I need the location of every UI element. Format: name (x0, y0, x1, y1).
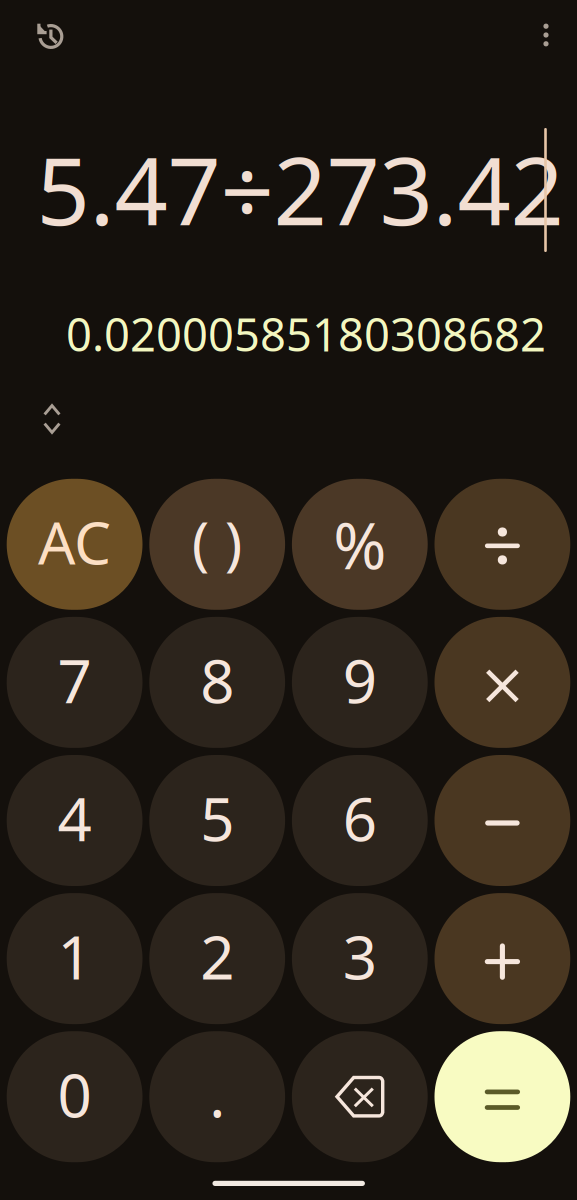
button[interactable]: AC (7, 479, 142, 610)
button[interactable]: Expand (30, 397, 74, 441)
button[interactable]: 5 (149, 755, 285, 886)
button[interactable]: 9 (292, 617, 428, 748)
button[interactable]: 3 (292, 893, 428, 1024)
staticText: 7 (58, 640, 92, 720)
staticText: 6 (343, 778, 377, 858)
staticText: 5 (200, 778, 234, 858)
button[interactable]: Multiply (434, 617, 570, 748)
staticText: 0.02000585180308682 (66, 304, 546, 364)
staticText: 0 (58, 1054, 92, 1134)
button[interactable]: Backspace (292, 1031, 428, 1162)
staticText: 2 (200, 916, 234, 996)
button[interactable]: Plus (434, 893, 570, 1024)
button[interactable]: Percent (292, 479, 428, 610)
staticText: 9 (343, 640, 377, 720)
button[interactable]: Parentheses (149, 479, 285, 610)
button[interactable]: 2 (149, 893, 285, 1024)
button[interactable]: 7 (7, 617, 142, 748)
staticText: % (333, 502, 386, 587)
button[interactable]: Minus (434, 755, 570, 886)
button[interactable]: 8 (149, 617, 285, 748)
staticText: . (209, 1054, 225, 1134)
staticText: 3 (343, 916, 377, 996)
button[interactable]: 1 (7, 893, 142, 1024)
button[interactable]: More options (524, 13, 568, 57)
staticText: 5.47÷273.42 (36, 127, 563, 251)
staticText: 1 (58, 916, 92, 996)
button[interactable]: 6 (292, 755, 428, 886)
staticText: AC (38, 503, 111, 581)
staticText: 4 (58, 778, 92, 858)
button[interactable]: History (28, 13, 72, 57)
button[interactable]: 4 (7, 755, 142, 886)
button[interactable]: Divide (434, 479, 570, 610)
button[interactable]: Equals (434, 1031, 570, 1162)
staticText: 8 (200, 640, 234, 720)
button[interactable]: Decimal point (149, 1031, 285, 1162)
staticText: ( ) (192, 503, 243, 581)
button[interactable]: 0 (7, 1031, 142, 1162)
